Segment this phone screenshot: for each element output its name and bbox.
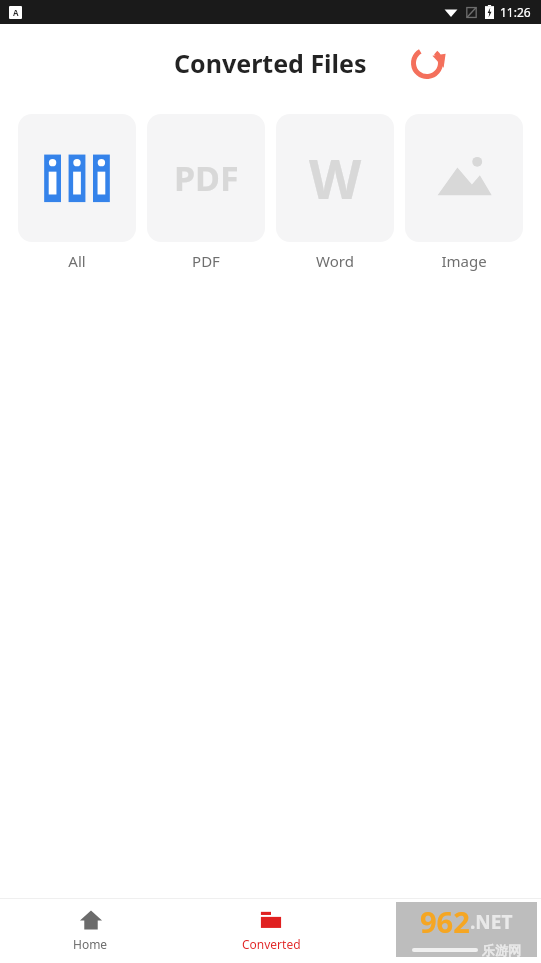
button[interactable]: Refresh [401, 37, 453, 89]
button[interactable]: More [361, 899, 541, 952]
staticText: Converted Files [174, 46, 367, 80]
button[interactable]: All [18, 114, 136, 271]
staticText: .NET [470, 909, 513, 935]
staticText: Converted [242, 936, 301, 952]
staticText: Image [441, 251, 487, 271]
staticText: A [13, 7, 19, 18]
staticText: 乐游网 [482, 942, 521, 957]
staticText: 962 [420, 902, 470, 941]
staticText: Word [316, 251, 354, 271]
staticText: Home [73, 936, 108, 952]
staticText: More [436, 936, 466, 952]
button[interactable]: Home [0, 899, 181, 952]
staticText: PDF [174, 155, 239, 201]
staticText: All [68, 251, 86, 271]
button[interactable]: W [276, 114, 394, 271]
staticText: PDF [192, 251, 220, 271]
button[interactable]: Converted [181, 899, 361, 952]
button[interactable]: Image [405, 114, 523, 271]
staticText: 11:26 [500, 4, 531, 20]
button[interactable]: PDF [147, 114, 265, 271]
staticText: W [309, 141, 362, 215]
